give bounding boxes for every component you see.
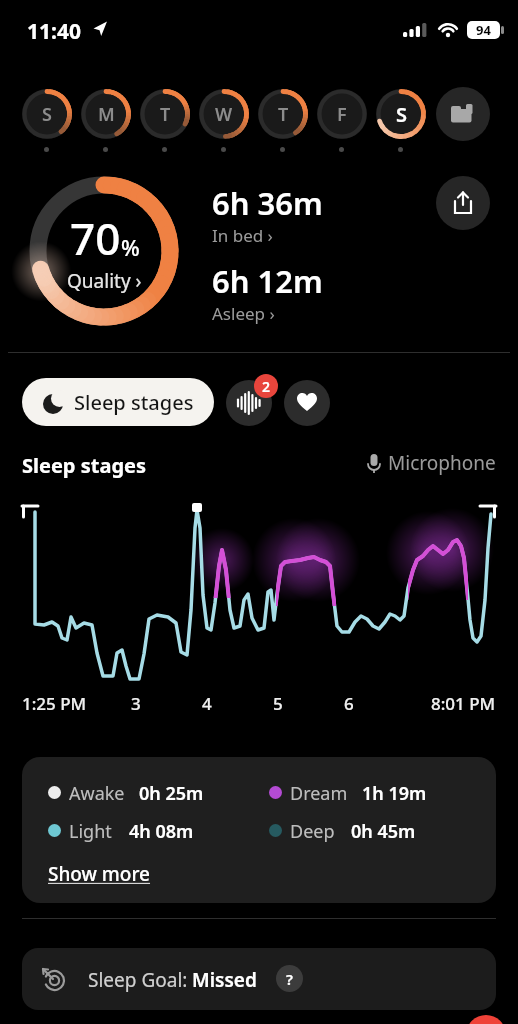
staticText: 0h 25m (139, 781, 204, 806)
staticText: Sleep Goal: (88, 967, 193, 993)
button[interactable]: ? (276, 965, 303, 992)
staticText: Missed (192, 967, 257, 993)
staticText: 1h 19m (362, 781, 427, 806)
staticText: 94 (476, 21, 491, 39)
button[interactable]: S (22, 89, 72, 139)
button[interactable]: 70 (29, 176, 179, 326)
staticText: Sleep stages (74, 389, 194, 416)
staticText: Asleep › (212, 302, 275, 325)
button[interactable]: Sleep stages (22, 378, 214, 426)
button[interactable]: Show more (48, 861, 151, 887)
staticText: 70 (70, 208, 121, 268)
staticText: 8:01 PM (431, 692, 496, 715)
staticText: 1:25 PM (22, 692, 87, 715)
staticText: ? (286, 969, 293, 989)
staticText: 3 (131, 692, 141, 715)
staticText: Microphone (388, 450, 496, 476)
staticText: In bed › (212, 224, 273, 247)
button[interactable]: T (140, 89, 190, 139)
staticText: S (396, 101, 407, 128)
button[interactable]: M (81, 89, 131, 139)
staticText: 11:40 (27, 17, 81, 46)
staticText: Awake (69, 781, 125, 806)
staticText: F (337, 102, 347, 127)
button[interactable]: S (376, 89, 426, 139)
button[interactable]: T (258, 89, 308, 139)
button[interactable] (436, 176, 490, 230)
staticText: 6h 36m (212, 182, 323, 224)
staticText: 5 (273, 692, 283, 715)
button[interactable]: Sleep Goal: (22, 948, 496, 1010)
button[interactable]: F (317, 89, 367, 139)
staticText: 0h 45m (351, 819, 416, 844)
button[interactable] (466, 1015, 506, 1024)
button[interactable] (436, 87, 490, 141)
staticText: 2 (262, 377, 271, 396)
staticText: Show more (48, 861, 151, 887)
button[interactable]: W (199, 89, 249, 139)
button[interactable]: 6h 36m (212, 182, 323, 247)
staticText: S (42, 102, 52, 127)
staticText: T (160, 102, 171, 127)
staticText: 6h 12m (212, 260, 323, 302)
staticText: M (98, 102, 115, 127)
staticText: Quality › (67, 268, 142, 294)
staticText: Sleep stages (22, 452, 147, 479)
staticText: Dream (290, 781, 348, 806)
staticText: Deep (290, 819, 335, 844)
button[interactable] (284, 380, 330, 426)
button[interactable]: 6h 12m (212, 260, 323, 325)
button[interactable]: Microphone (366, 450, 496, 476)
staticText: W (215, 102, 233, 127)
button[interactable] (226, 380, 272, 426)
staticText: T (278, 102, 289, 127)
staticText: % (121, 232, 140, 262)
staticText: Light (69, 819, 112, 844)
staticText: 6 (344, 692, 354, 715)
staticText: 4h 08m (129, 819, 194, 844)
staticText: 4 (202, 692, 212, 715)
